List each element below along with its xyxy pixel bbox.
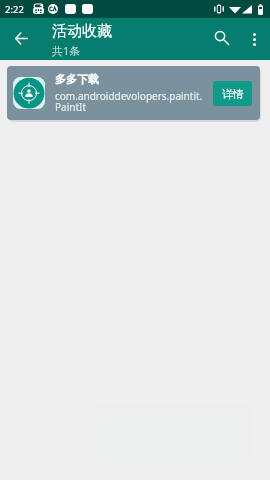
button[interactable]: 多多下载 (7, 66, 260, 120)
button[interactable]: More options (237, 18, 267, 60)
staticText: 多多下载 (55, 72, 99, 86)
staticText: com.androiddevolopers.paintit.PaintIt (55, 89, 207, 114)
button[interactable]: Back (0, 18, 42, 60)
staticText: 2:22 (5, 3, 24, 16)
staticText: 共1条 (52, 43, 81, 58)
button[interactable]: Search (201, 18, 237, 60)
staticText: 活动收藏 (52, 22, 112, 41)
button[interactable]: 详情 (213, 81, 252, 106)
staticText: 详情 (222, 87, 244, 101)
